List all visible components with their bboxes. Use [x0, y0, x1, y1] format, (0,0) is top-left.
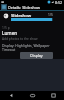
staticText: Details: Slideshow: [8, 5, 41, 10]
staticText: 8:52: [55, 0, 63, 4]
button[interactable]: Back: [0, 91, 22, 100]
button[interactable]: Display: [20, 52, 53, 59]
staticText: Timeout: [2, 47, 16, 52]
staticText: Display: [30, 53, 43, 58]
button[interactable]: Recent apps: [43, 91, 64, 100]
button[interactable]: Home: [22, 91, 43, 100]
staticText: 1/5 p: [2, 26, 10, 30]
staticText: Slideshow: [11, 13, 32, 19]
button[interactable]: Details: Slideshow: [0, 4, 64, 10]
staticText: Lumen: [2, 30, 18, 36]
staticText: Add photos to the show: [2, 37, 38, 41]
staticText: Display: Highlights, Wallpaper: [2, 43, 50, 48]
staticText: 1/5: [48, 13, 53, 17]
